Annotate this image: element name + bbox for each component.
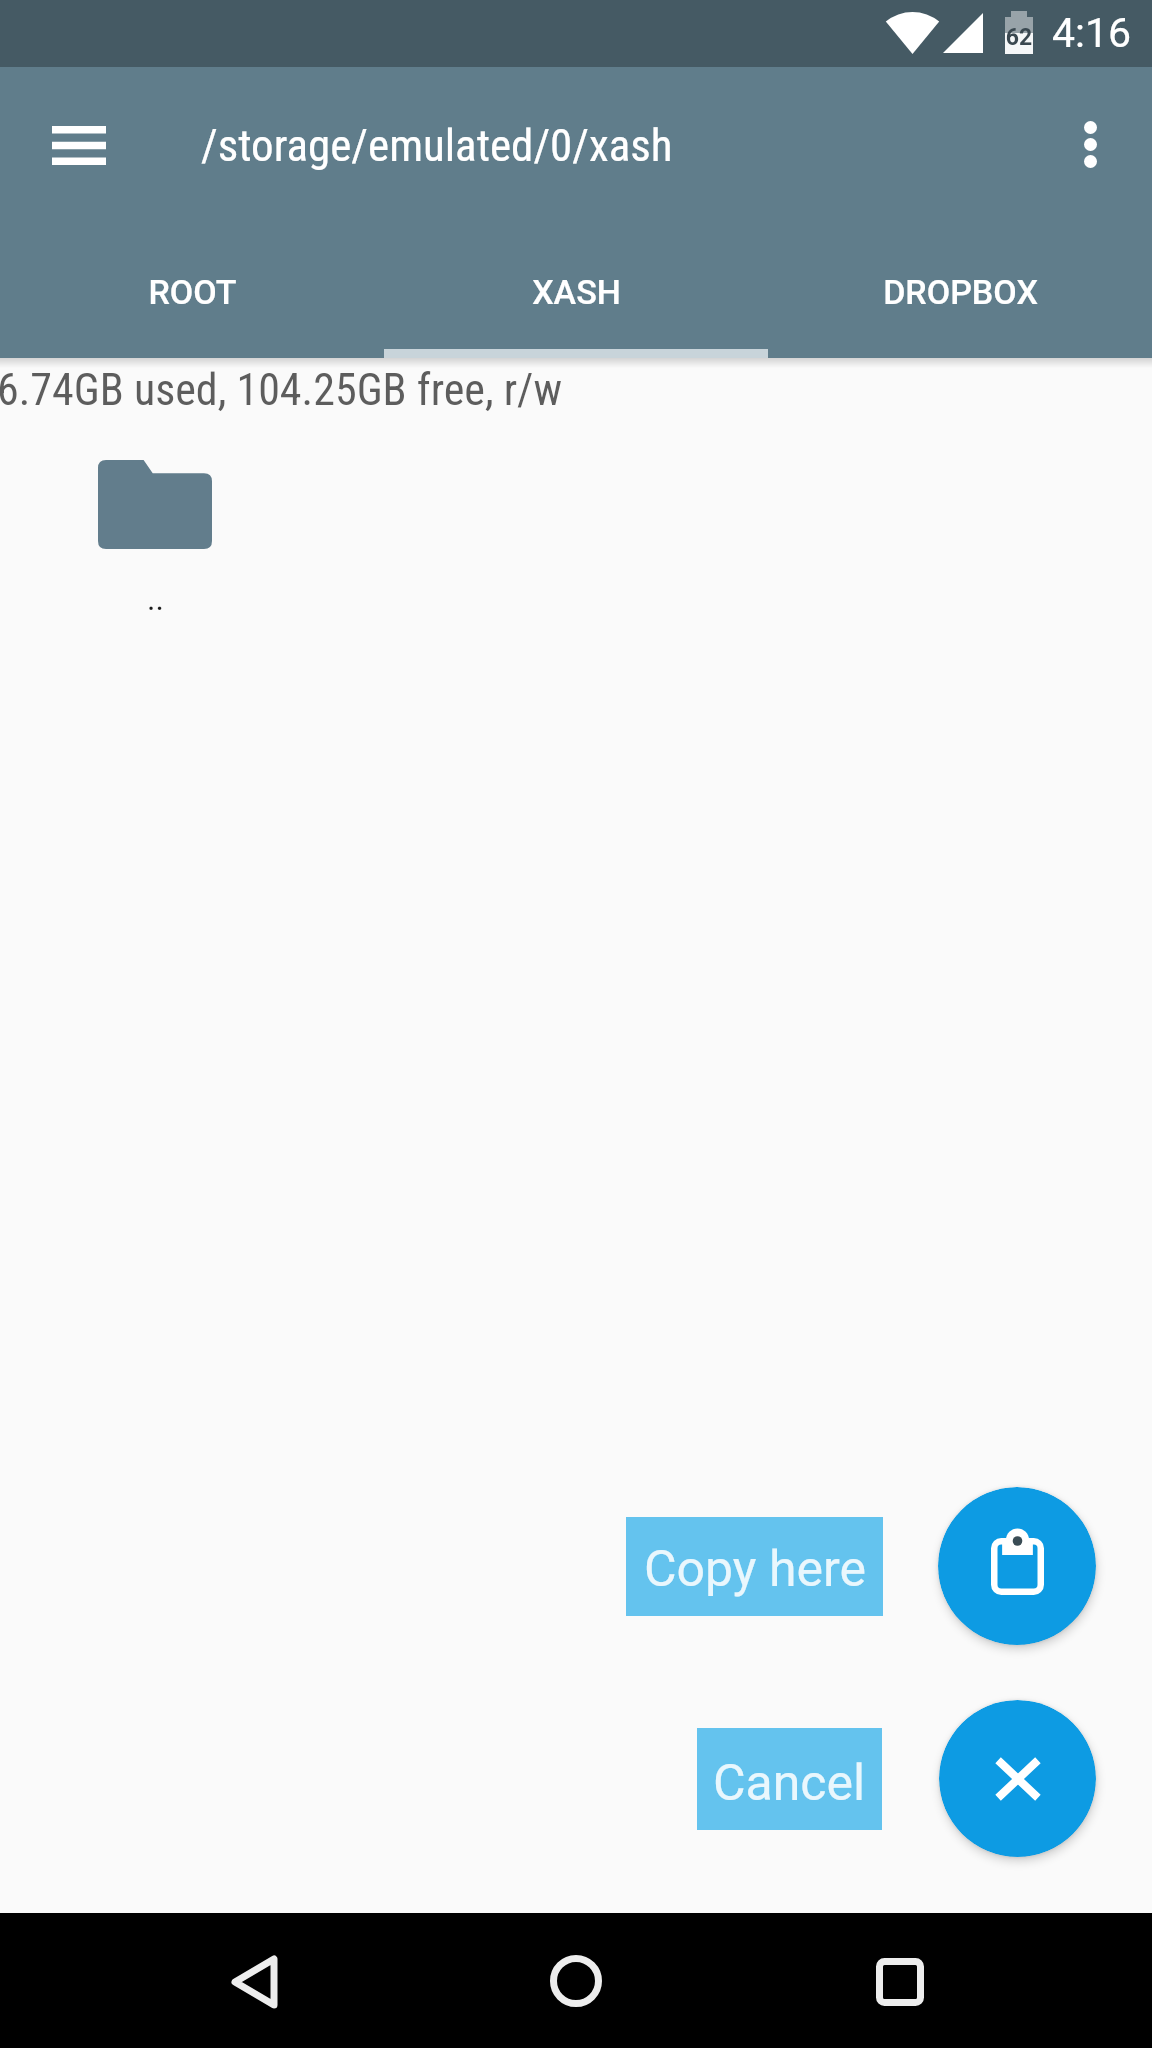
button[interactable]: Recent apps	[845, 1927, 955, 2037]
button[interactable]: Copy here	[626, 1517, 883, 1616]
button[interactable]: ROOT	[0, 242, 384, 358]
staticText: /storage/emulated/0/xash	[201, 119, 673, 172]
staticText: ROOT	[148, 272, 237, 312]
button[interactable]: Cancel	[697, 1728, 882, 1830]
button[interactable]: More options	[1054, 108, 1126, 180]
button[interactable]: XASH	[384, 242, 768, 358]
button[interactable]: DROPBOX	[768, 242, 1152, 358]
staticText: DROPBOX	[883, 272, 1038, 312]
staticText: Copy here	[644, 1540, 866, 1599]
staticText: ..	[147, 580, 164, 618]
button[interactable]: Home	[521, 1926, 631, 2036]
staticText: 4:16	[1052, 9, 1132, 57]
staticText: 62	[1005, 24, 1033, 51]
button[interactable]: Open navigation drawer	[40, 106, 118, 184]
staticText: 6.74GB used, 104.25GB free, r/w	[0, 364, 562, 416]
staticText: XASH	[532, 272, 621, 312]
button[interactable]: Cancel	[939, 1700, 1096, 1857]
staticText: Cancel	[713, 1754, 866, 1813]
button[interactable]: Back	[199, 1927, 309, 2037]
button[interactable]: Copy here	[938, 1487, 1096, 1645]
